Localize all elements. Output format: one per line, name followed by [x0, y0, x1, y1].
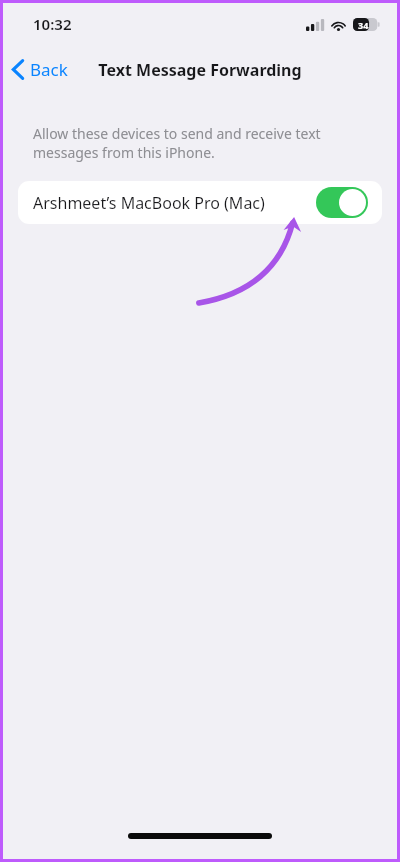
button[interactable]: Toggle text message forwarding [316, 187, 368, 218]
staticText: Allow these devices to send and receive … [33, 124, 321, 162]
button[interactable]: Back [3, 54, 78, 85]
button[interactable]: Arshmeet’s MacBook Pro (Mac) [18, 181, 382, 224]
staticText: Back [30, 58, 68, 81]
staticText: Arshmeet’s MacBook Pro (Mac) [33, 192, 265, 214]
staticText: 34 [358, 19, 369, 31]
staticText: Text Message Forwarding [98, 59, 302, 81]
staticText: 10:32 [33, 14, 72, 34]
